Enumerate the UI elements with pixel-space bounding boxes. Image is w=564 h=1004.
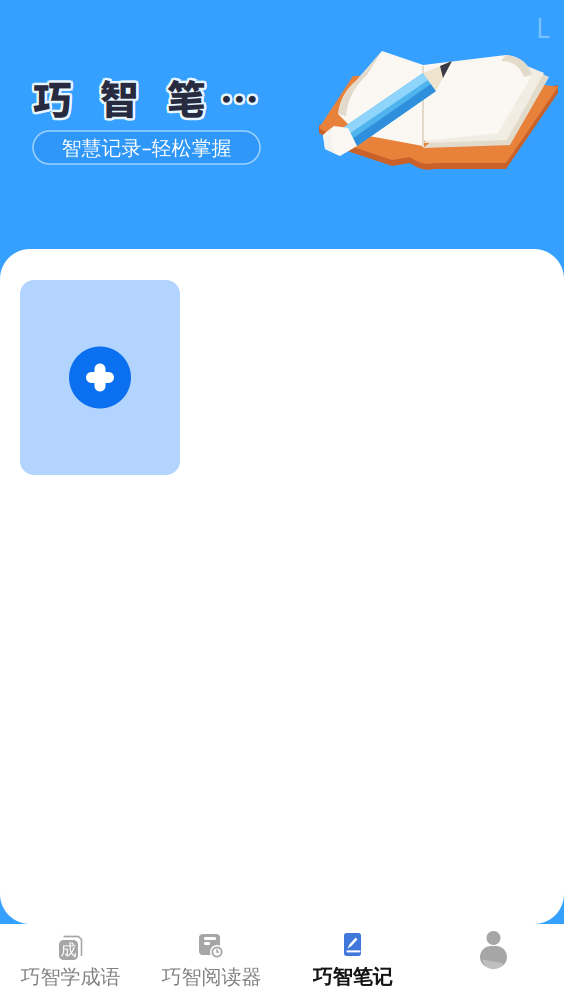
staticText: 巧智笔记 bbox=[35, 69, 247, 125]
staticText: 成 bbox=[60, 940, 76, 960]
staticText: 巧智笔记 bbox=[33, 71, 245, 127]
staticText: 巧智笔记 bbox=[33, 69, 245, 125]
button[interactable] bbox=[423, 924, 564, 1004]
staticText: 巧智笔记 bbox=[312, 965, 392, 989]
button[interactable]: 成 bbox=[0, 924, 141, 1004]
button[interactable]: 巧智笔记 bbox=[282, 924, 423, 1004]
staticText: 巧智笔记 bbox=[31, 67, 243, 123]
staticText: 巧智阅读器 bbox=[161, 965, 261, 989]
staticText: 巧智笔记 bbox=[31, 71, 243, 127]
staticText: 巧智笔记 bbox=[35, 71, 247, 127]
staticText: 巧智笔记 bbox=[33, 66, 245, 122]
staticText: L bbox=[536, 10, 550, 45]
staticText: 巧智笔记 bbox=[35, 67, 247, 123]
staticText: 巧智笔记 bbox=[30, 69, 242, 125]
button[interactable]: 巧智阅读器 bbox=[141, 924, 282, 1004]
staticText: 智慧记录–轻松掌握 bbox=[61, 134, 231, 161]
staticText: 巧智学成语 bbox=[20, 965, 120, 989]
button[interactable]: New note bbox=[20, 280, 180, 475]
